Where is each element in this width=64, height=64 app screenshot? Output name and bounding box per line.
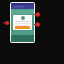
other: Avatar — [21, 16, 25, 20]
button[interactable]: Annotation marker — [34, 22, 40, 27]
button[interactable]: Left annotation marker — [3, 21, 9, 25]
button[interactable]: Avatar — [11, 3, 34, 42]
button[interactable]: Primary action — [15, 26, 30, 29]
button[interactable]: Avatar — [13, 15, 32, 30]
button[interactable]: Annotation marker — [34, 12, 40, 17]
button[interactable] — [11, 3, 34, 9]
